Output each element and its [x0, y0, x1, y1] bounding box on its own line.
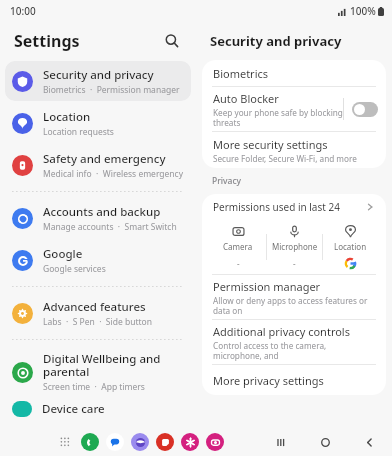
button[interactable]: Recent apps: [272, 433, 290, 451]
button[interactable]: Safety and emergency: [5, 145, 191, 185]
staticText: Control access to the camera, microphone…: [213, 340, 375, 361]
staticText: Allow or deny apps to access features or…: [213, 295, 375, 316]
button[interactable]: Camera: [210, 225, 266, 269]
staticText: Location: [334, 241, 367, 252]
staticText: Additional privacy controls: [213, 324, 350, 339]
staticText: Medical info · Wireless emergency alerts: [43, 168, 184, 180]
staticText: Manage accounts · Smart Switch: [43, 221, 177, 233]
staticText: Safety and emergency: [43, 151, 166, 167]
button[interactable]: Back: [360, 433, 378, 451]
button[interactable]: Location: [5, 103, 191, 143]
staticText: Google services: [43, 263, 106, 275]
staticText: Labs · S Pen · Side button: [43, 316, 152, 328]
button[interactable]: Apps: [56, 433, 74, 451]
staticText: Settings: [14, 30, 80, 52]
staticText: Accounts and backup: [43, 204, 161, 220]
button[interactable]: Security and privacy: [5, 61, 191, 101]
staticText: Microphone: [272, 241, 318, 252]
button[interactable]: Device care: [0, 399, 196, 417]
staticText: Biometrics · Permission manager: [43, 84, 180, 96]
button[interactable]: Internet: [131, 433, 149, 451]
button[interactable]: Messages: [106, 433, 124, 451]
staticText: Digital Wellbeing and parental controls: [43, 351, 184, 380]
staticText: Auto Blocker: [213, 91, 279, 106]
button[interactable]: Gallery: [181, 433, 199, 451]
staticText: Camera: [223, 241, 253, 252]
staticText: Screen time · App timers: [43, 381, 145, 393]
button[interactable]: Additional privacy controls: [202, 320, 386, 364]
staticText: Location requests: [43, 126, 114, 138]
staticText: -: [293, 258, 296, 269]
staticText: Google: [43, 246, 83, 262]
staticText: 100%: [350, 4, 376, 18]
button[interactable]: Location: [323, 225, 378, 269]
button[interactable]: Search settings: [160, 29, 184, 53]
button[interactable]: Auto Blocker: [202, 87, 386, 131]
button[interactable]: Digital Wellbeing and parental controls: [5, 346, 191, 398]
button[interactable]: Microphone: [267, 225, 322, 269]
staticText: Security and privacy: [43, 67, 154, 83]
button[interactable]: Auto Blocker toggle: [352, 102, 378, 117]
staticText: Biometrics: [213, 66, 269, 81]
button[interactable]: Home: [316, 433, 334, 451]
staticText: Permission manager: [213, 279, 321, 294]
button[interactable]: Notes: [156, 433, 174, 451]
button[interactable]: Biometrics: [202, 60, 386, 86]
staticText: Location: [43, 109, 91, 125]
button[interactable]: Google: [5, 240, 191, 280]
button[interactable]: More privacy settings: [202, 365, 386, 395]
button[interactable]: Permission manager: [202, 275, 386, 319]
button[interactable]: Permissions used in last 24 hours: [202, 194, 386, 220]
button[interactable]: More security settings: [202, 132, 386, 168]
staticText: Device care: [42, 401, 105, 417]
staticText: More security settings: [213, 137, 328, 152]
button[interactable]: Camera: [206, 433, 224, 451]
staticText: More privacy settings: [213, 373, 324, 388]
staticText: Security and privacy: [210, 32, 342, 50]
button[interactable]: Advanced features: [5, 293, 191, 333]
staticText: Secure Folder, Secure Wi-Fi, and more: [213, 153, 357, 164]
button[interactable]: Phone: [81, 433, 99, 451]
staticText: Privacy: [212, 175, 242, 187]
staticText: Permissions used in last 24 hours: [213, 200, 365, 214]
staticText: 10:00: [10, 4, 36, 18]
button[interactable]: Accounts and backup: [5, 198, 191, 238]
staticText: Advanced features: [43, 299, 146, 315]
staticText: -: [237, 258, 240, 269]
staticText: Keep your phone safe by blocking threats…: [213, 107, 343, 128]
